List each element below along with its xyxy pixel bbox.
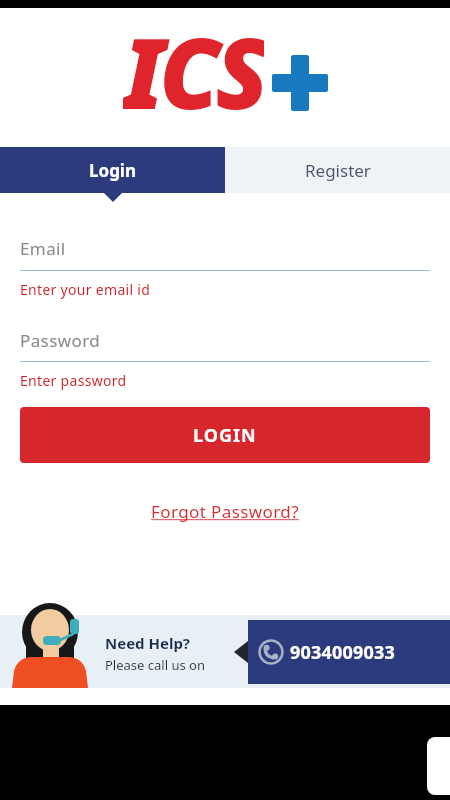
staticText: Please call us on (105, 656, 205, 674)
staticText: ICS (123, 5, 264, 117)
staticText: Email (20, 237, 66, 260)
button[interactable]: 9034009033 (248, 620, 450, 684)
button[interactable]: LOGIN (20, 407, 430, 463)
staticText: LOGIN (193, 423, 257, 448)
button[interactable]: Forgot Password? (151, 500, 299, 523)
button[interactable]: Register (225, 147, 450, 193)
staticText: Password (20, 329, 101, 352)
staticText: Need Help? (105, 633, 191, 653)
staticText: Enter your email id (20, 280, 151, 299)
staticText: 9034009033 (290, 640, 395, 665)
button[interactable]: Login (0, 147, 225, 193)
staticText: Register (305, 159, 371, 182)
staticText: Login (89, 159, 137, 182)
staticText: Enter password (20, 371, 127, 390)
